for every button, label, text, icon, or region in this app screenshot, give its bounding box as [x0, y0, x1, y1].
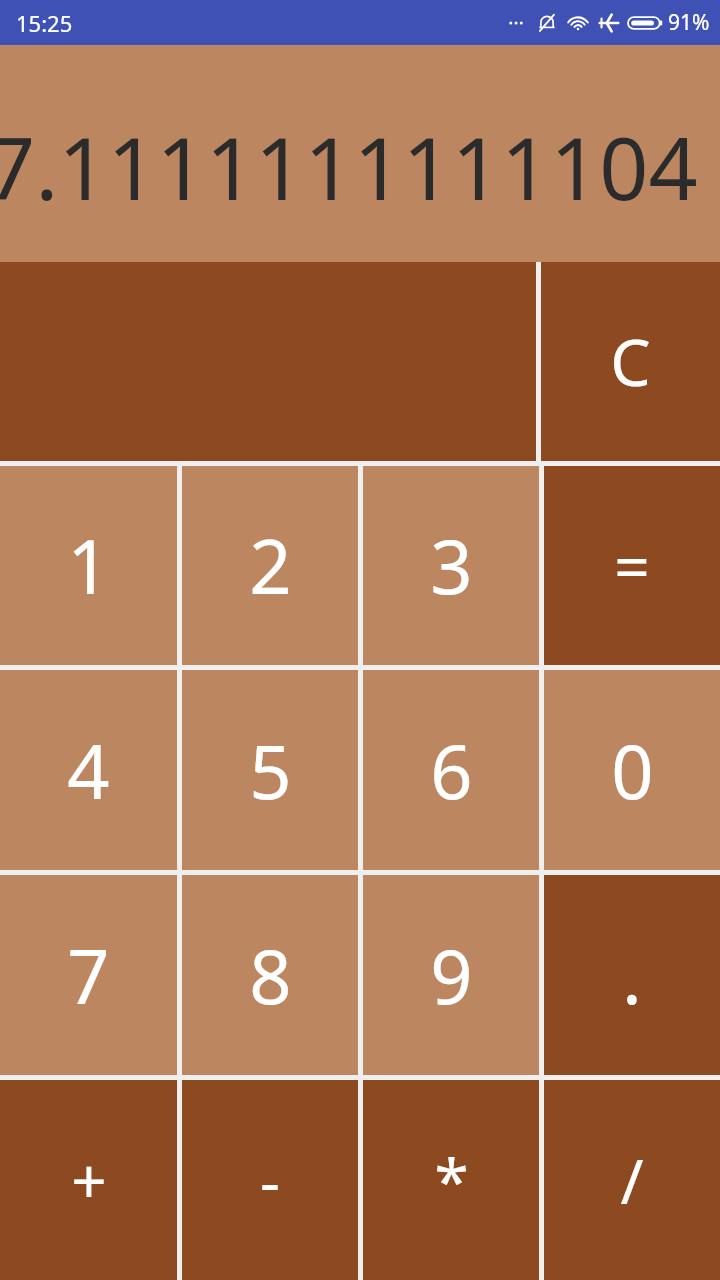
button[interactable]: 3 [363, 466, 539, 665]
button[interactable]: 0 [544, 670, 720, 870]
staticText: 3 [430, 515, 473, 616]
staticText: - [260, 1138, 280, 1222]
button[interactable]: 8 [182, 875, 358, 1075]
staticText: 4 [67, 720, 110, 821]
button[interactable]: / [544, 1080, 720, 1280]
button[interactable]: 1 [0, 466, 177, 665]
staticText: . [622, 925, 642, 1026]
staticText: * [434, 1138, 469, 1222]
staticText: 1 [67, 515, 110, 616]
button[interactable]: 9 [363, 875, 539, 1075]
button[interactable]: * [363, 1080, 539, 1280]
button[interactable]: 7 [0, 875, 177, 1075]
button[interactable]: 2 [182, 466, 358, 665]
button[interactable]: 4 [0, 670, 177, 870]
button[interactable]: C [541, 262, 720, 461]
staticText: + [71, 1138, 107, 1222]
staticText: 7 [67, 925, 110, 1026]
staticText: 9 [430, 925, 473, 1026]
button[interactable]: . [544, 875, 720, 1075]
staticText: 7.1111111111104E12 [0, 108, 706, 225]
button[interactable]: = [544, 466, 720, 665]
button[interactable]: 5 [182, 670, 358, 870]
staticText: = [614, 524, 650, 608]
staticText: 15:25 [16, 8, 73, 38]
button[interactable]: 6 [363, 670, 539, 870]
staticText: 6 [430, 720, 473, 821]
staticText: 91% [668, 8, 710, 37]
staticText: 8 [249, 925, 292, 1026]
staticText: C [610, 318, 651, 405]
button[interactable]: - [182, 1080, 358, 1280]
staticText: 5 [249, 720, 292, 821]
staticText: / [620, 1138, 644, 1222]
staticText: 0 [611, 720, 654, 821]
button[interactable]: + [0, 1080, 177, 1280]
staticText: 2 [249, 515, 292, 616]
